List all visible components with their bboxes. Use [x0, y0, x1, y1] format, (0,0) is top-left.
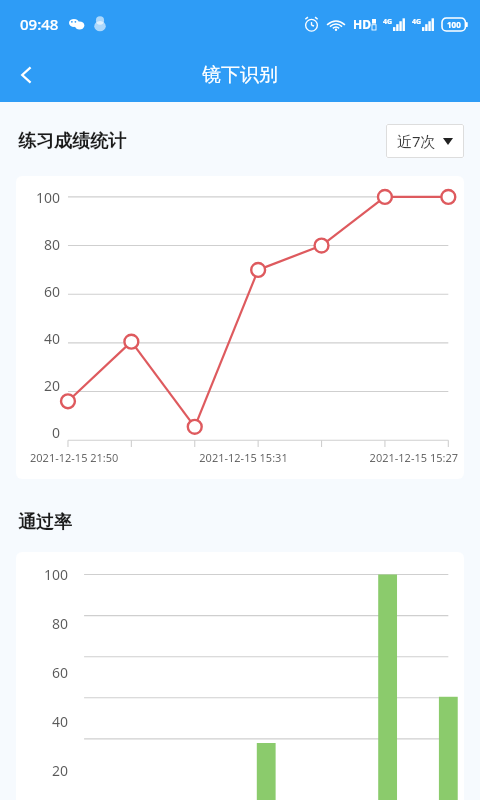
- staticText: 4G: [383, 17, 393, 27]
- button[interactable]: Back: [0, 48, 54, 102]
- staticText: 2021-12-15 21:50: [30, 450, 172, 465]
- staticText: 20: [51, 761, 68, 780]
- staticText: HD: [353, 16, 371, 32]
- staticText: 100: [447, 19, 461, 30]
- staticText: 09:48: [20, 14, 59, 34]
- staticText: 100: [43, 565, 68, 584]
- staticText: 80: [51, 614, 68, 633]
- staticText: 通过率: [18, 511, 72, 534]
- staticText: 2021-12-15 15:27: [315, 450, 458, 465]
- staticText: 20: [43, 376, 60, 395]
- staticText: 练习成绩统计: [18, 130, 126, 153]
- staticText: 40: [51, 712, 68, 731]
- staticText: 60: [51, 663, 68, 682]
- staticText: 0: [51, 423, 60, 442]
- staticText: 近7次: [397, 131, 436, 151]
- staticText: 4G: [412, 17, 422, 27]
- staticText: 80: [43, 235, 60, 254]
- staticText: 镜下识别: [202, 63, 278, 87]
- staticText: 40: [43, 329, 60, 348]
- staticText: 100: [35, 188, 60, 207]
- staticText: 2021-12-15 15:31: [172, 450, 315, 465]
- staticText: 60: [43, 282, 60, 301]
- button[interactable]: 近7次: [386, 124, 464, 158]
